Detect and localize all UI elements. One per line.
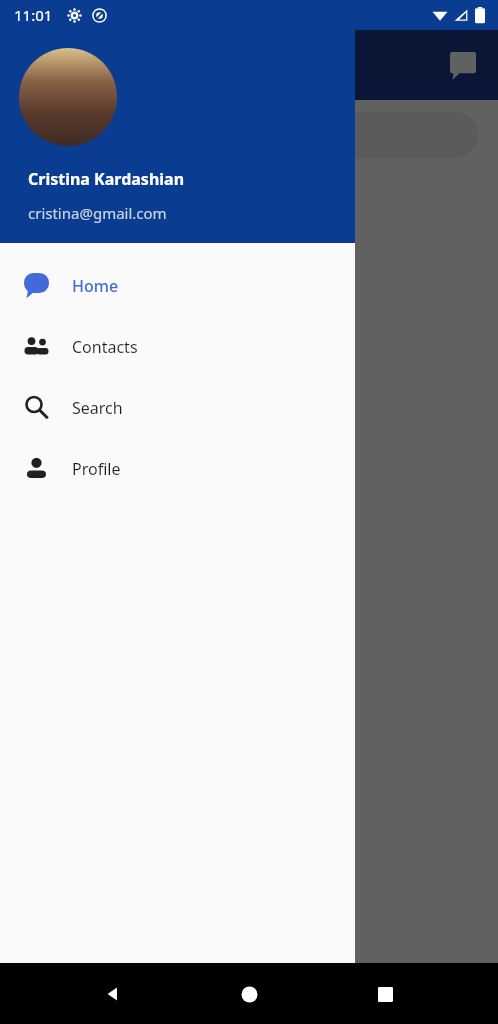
button[interactable]: Ella Kross [100,174,186,281]
button[interactable]: Tom Hardy [0,755,498,870]
button[interactable]: Home [226,971,272,1017]
button[interactable]: Back [90,971,136,1017]
button[interactable]: Ella Kross [0,295,498,410]
button[interactable]: Contacts [0,316,355,377]
button[interactable]: Your story [14,174,100,281]
staticText: Mark Twain [96,443,196,466]
button[interactable]: Jessica Moore [0,640,498,755]
button[interactable]: Mark Twain [0,410,498,525]
button[interactable]: Profile [0,438,355,499]
staticText: 11:01 [14,5,53,25]
staticText: Search [66,125,114,145]
button[interactable]: Home [0,255,355,316]
staticText: Ella Kross [96,328,177,351]
button[interactable]: New message [446,48,480,82]
button[interactable]: Profile photo [19,48,117,146]
staticText: See you soon • 10:04 AM [96,472,269,492]
button[interactable]: Recent apps [362,971,408,1017]
staticText: Your story [40,243,74,281]
button[interactable]: Search [20,112,478,158]
button[interactable]: Close navigation drawer [0,0,498,963]
staticText: Chats [20,51,80,80]
button[interactable]: Mark Twain [186,174,272,281]
button[interactable]: Search [0,377,355,438]
staticText: Contacts [72,336,138,358]
staticText: Profile [72,458,121,480]
staticText: cristina@gmail.com [28,203,167,223]
staticText: Cristina Kardashian [28,168,185,190]
staticText: Home [72,275,119,297]
staticText: Search [72,397,123,419]
button[interactable]: Camila Bardley [272,174,358,281]
button[interactable]: Camila Bardley [0,525,498,640]
